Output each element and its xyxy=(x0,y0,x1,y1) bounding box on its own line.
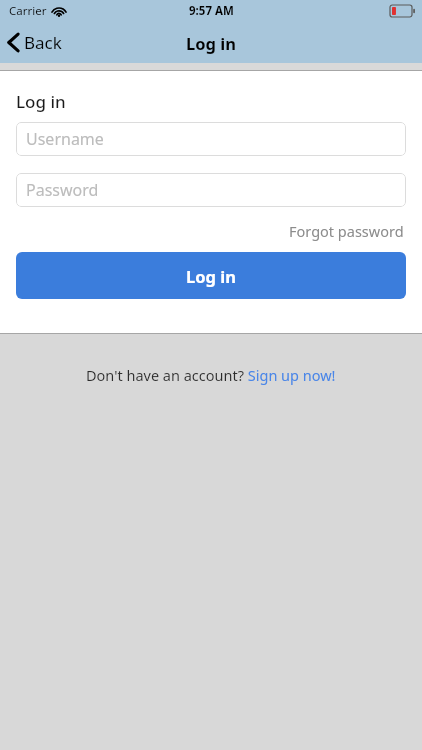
staticText: Log in xyxy=(16,90,66,113)
button[interactable]: Log in xyxy=(16,252,406,299)
staticText: Don't have an account? Sign up now! xyxy=(86,365,336,385)
button[interactable]: Forgot password xyxy=(287,219,406,243)
staticText: Log in xyxy=(186,32,236,54)
staticText: Password xyxy=(26,179,99,201)
other: Battery low xyxy=(390,5,415,17)
staticText: 9:57 AM xyxy=(189,3,234,19)
button[interactable]: Username xyxy=(16,122,406,156)
staticText: Carrier xyxy=(9,3,47,19)
button[interactable]: Password xyxy=(16,173,406,207)
staticText: Username xyxy=(26,128,104,150)
other: Wi-Fi xyxy=(52,6,66,17)
staticText: Forgot password xyxy=(289,221,404,241)
button[interactable]: Back xyxy=(0,27,70,58)
button[interactable]: Don't have an account? Sign up now! xyxy=(82,363,340,387)
staticText: Log in xyxy=(186,265,236,287)
staticText: Back xyxy=(24,31,62,54)
